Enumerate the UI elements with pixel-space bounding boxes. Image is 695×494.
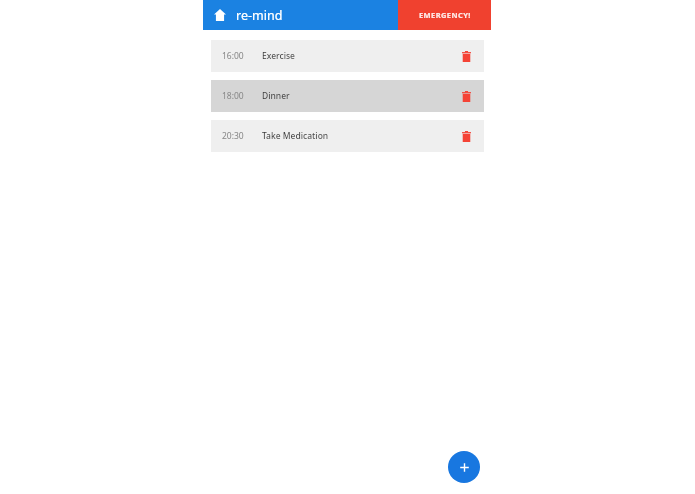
staticText: Take Medication <box>262 130 329 142</box>
staticText: 18:00 <box>222 90 244 102</box>
staticText: re-mind <box>236 7 283 24</box>
button[interactable]: Delete Exercise <box>457 47 475 65</box>
staticText: Dinner <box>262 90 290 102</box>
button[interactable]: Delete Take Medication <box>457 127 475 145</box>
button[interactable]: Delete Dinner <box>457 87 475 105</box>
button[interactable]: 16:00 <box>211 40 484 72</box>
button[interactable]: Home <box>203 0 398 30</box>
staticText: 20:30 <box>222 130 244 142</box>
staticText: EMERGENCY! <box>419 10 471 20</box>
other: Home <box>212 7 228 23</box>
button[interactable]: 18:00 <box>211 80 484 112</box>
button[interactable]: EMERGENCY! <box>398 0 491 30</box>
staticText: 16:00 <box>222 50 244 62</box>
button[interactable]: 20:30 <box>211 120 484 152</box>
staticText: Exercise <box>262 50 295 62</box>
button[interactable]: Add reminder <box>448 451 480 483</box>
